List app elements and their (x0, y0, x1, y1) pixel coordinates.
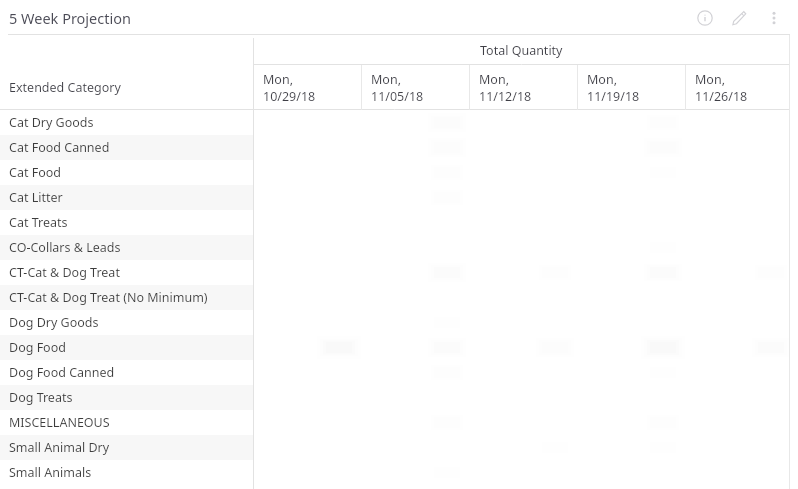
button[interactable]: Edit (729, 8, 749, 28)
button[interactable]: Cat Litter (0, 185, 798, 210)
button[interactable]: Mon, 11/19/18 (578, 65, 686, 110)
staticText: Mon, 11/26/18 (695, 71, 748, 105)
staticText: CT-Cat & Dog Treat (No Minimum) (9, 289, 208, 306)
button[interactable]: MISCELLANEOUS (0, 410, 798, 435)
staticText: Total Quantity (480, 42, 563, 59)
staticText: Mon, 11/19/18 (587, 71, 640, 105)
staticText: Cat Treats (9, 214, 68, 231)
button[interactable]: CT-Cat & Dog Treat (No Minimum) (0, 285, 798, 310)
button[interactable]: Cat Treats (0, 210, 798, 235)
button[interactable]: Dog Treats (0, 385, 798, 410)
button[interactable]: Small Animal Dry (0, 435, 798, 460)
button[interactable]: Mon, 10/29/18 (254, 65, 362, 110)
staticText: Dog Food Canned (9, 364, 115, 381)
staticText: MISCELLANEOUS (9, 414, 110, 431)
staticText: CT-Cat & Dog Treat (9, 264, 120, 281)
button[interactable]: Cat Food (0, 160, 798, 185)
staticText: 5 Week Projection (9, 8, 131, 28)
staticText: Dog Treats (9, 389, 73, 406)
button[interactable]: Mon, 11/26/18 (686, 65, 794, 110)
button[interactable]: Dog Dry Goods (0, 310, 798, 335)
button[interactable]: More options (764, 8, 784, 28)
staticText: Mon, 11/12/18 (479, 71, 532, 105)
staticText: Extended Category (9, 79, 121, 96)
button[interactable]: Extended Category (0, 65, 798, 110)
staticText: Cat Dry Goods (9, 114, 94, 131)
staticText: Dog Food (9, 339, 66, 356)
staticText: Cat Litter (9, 189, 63, 206)
staticText: Mon, 11/05/18 (371, 71, 424, 105)
button[interactable]: Mon, 11/12/18 (470, 65, 578, 110)
button[interactable]: Mon, 11/05/18 (362, 65, 470, 110)
staticText: Small Animals (9, 464, 92, 481)
button[interactable]: Cat Dry Goods (0, 110, 798, 135)
button[interactable]: Dog Food (0, 335, 798, 360)
staticText: Dog Dry Goods (9, 314, 99, 331)
staticText: Small Animal Dry (9, 439, 110, 456)
button[interactable]: Information (695, 8, 715, 28)
button[interactable]: Small Animals (0, 460, 798, 485)
button[interactable]: CO-Collars & Leads (0, 235, 798, 260)
staticText: CO-Collars & Leads (9, 239, 121, 256)
staticText: Mon, 10/29/18 (263, 71, 316, 105)
staticText: Cat Food (9, 164, 61, 181)
button[interactable]: CT-Cat & Dog Treat (0, 260, 798, 285)
button[interactable]: Dog Food Canned (0, 360, 798, 385)
staticText: Cat Food Canned (9, 139, 110, 156)
button[interactable]: Cat Food Canned (0, 135, 798, 160)
